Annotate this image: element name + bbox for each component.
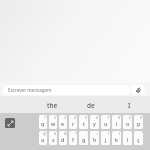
button[interactable]: 4 xyxy=(69,115,77,129)
button[interactable]: 0 xyxy=(134,115,143,129)
staticText: u xyxy=(104,120,108,127)
staticText: * xyxy=(75,131,77,136)
button[interactable]: 3 xyxy=(59,115,67,129)
staticText: r xyxy=(72,120,75,127)
button[interactable]: 1 xyxy=(39,115,47,129)
staticText: Escrever mensagem xyxy=(8,87,52,93)
staticText: e xyxy=(61,120,65,127)
button[interactable]: @ xyxy=(39,131,47,145)
staticText: - xyxy=(86,131,88,136)
staticText: p xyxy=(137,120,141,127)
button[interactable]: * xyxy=(69,131,77,145)
staticText: 8 xyxy=(118,115,121,120)
button[interactable]: ) xyxy=(112,131,121,145)
staticText: @ xyxy=(43,131,47,136)
staticText: y xyxy=(93,120,96,127)
staticText: h xyxy=(93,136,97,143)
staticText: o xyxy=(126,120,130,127)
button[interactable]: 2 xyxy=(49,115,57,129)
button[interactable]: de xyxy=(72,96,110,113)
button[interactable]: 9 xyxy=(123,115,132,129)
staticText: g xyxy=(82,136,86,143)
staticText: the xyxy=(47,101,58,110)
staticText: l xyxy=(127,136,129,143)
staticText: 1 xyxy=(44,115,47,120)
staticText: 9 xyxy=(129,115,132,120)
staticText: + xyxy=(96,131,99,136)
staticText: 5 xyxy=(85,115,88,120)
button[interactable]: - xyxy=(79,131,88,145)
staticText: t xyxy=(83,120,85,127)
staticText: " xyxy=(141,131,143,136)
button[interactable]: I xyxy=(110,96,148,113)
button[interactable]: 7 xyxy=(101,115,110,129)
staticText: q xyxy=(41,120,45,127)
staticText: i xyxy=(116,120,118,127)
staticText: ç xyxy=(137,136,140,143)
staticText: s xyxy=(52,136,55,143)
staticText: 3 xyxy=(64,115,67,120)
staticText: ) xyxy=(119,131,121,136)
staticText: w xyxy=(51,120,56,127)
staticText: ' xyxy=(131,131,132,136)
staticText: 0 xyxy=(140,115,143,120)
staticText: 6 xyxy=(96,115,99,120)
staticText: 7 xyxy=(107,115,110,120)
button[interactable]: 6 xyxy=(90,115,99,129)
staticText: 2 xyxy=(54,115,57,120)
button[interactable]: Escrever mensagem xyxy=(3,85,130,95)
staticText: f xyxy=(72,136,74,143)
button[interactable]: 5 xyxy=(79,115,88,129)
staticText: # xyxy=(54,131,57,136)
staticText: de xyxy=(87,101,95,110)
button[interactable]: the xyxy=(33,96,72,113)
button[interactable]: # xyxy=(49,131,57,145)
button[interactable]: + xyxy=(90,131,99,145)
staticText: & xyxy=(64,131,67,136)
button[interactable]: " xyxy=(134,131,143,145)
staticText: d xyxy=(61,136,65,143)
staticText: I xyxy=(128,101,131,110)
staticText: k xyxy=(115,136,118,143)
staticText: ( xyxy=(108,131,110,136)
staticText: j xyxy=(105,136,107,143)
button[interactable]: Resize keyboard xyxy=(5,118,15,128)
button[interactable]: Attach file xyxy=(131,85,145,95)
staticText: 4 xyxy=(74,115,77,120)
button[interactable]: 8 xyxy=(112,115,121,129)
button[interactable]: ( xyxy=(101,131,110,145)
button[interactable]: & xyxy=(59,131,67,145)
staticText: a xyxy=(41,136,45,143)
button[interactable]: ' xyxy=(123,131,132,145)
